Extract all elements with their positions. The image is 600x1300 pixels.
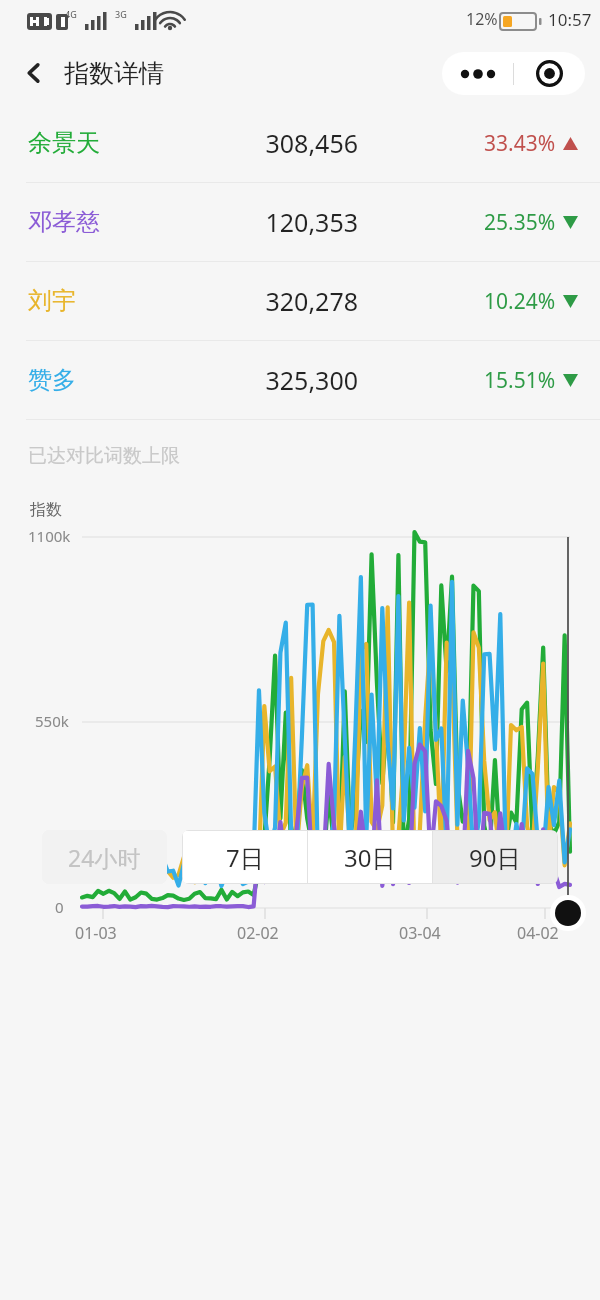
button[interactable]: 24小时 bbox=[42, 830, 167, 884]
staticText: 指数详情 bbox=[64, 58, 164, 89]
staticText: 邓孝慈 bbox=[28, 207, 208, 237]
staticText: 03-04 bbox=[399, 922, 441, 944]
staticText: 308,456 bbox=[208, 126, 358, 160]
button[interactable]: 30日 bbox=[308, 831, 432, 883]
staticText: 90日 bbox=[469, 841, 521, 874]
staticText: 10:57 bbox=[548, 8, 592, 31]
staticText: 30日 bbox=[344, 841, 396, 874]
staticText: 赞多 bbox=[28, 365, 208, 395]
staticText: 04-02 bbox=[517, 922, 559, 944]
button[interactable]: 7日 bbox=[183, 831, 307, 883]
button[interactable]: 邓孝慈 bbox=[0, 183, 600, 261]
staticText: 已达对比词数上限 bbox=[28, 444, 180, 468]
button[interactable]: 赞多 bbox=[0, 341, 600, 419]
staticText: 10.24% bbox=[484, 287, 556, 316]
staticText: 120,353 bbox=[208, 205, 358, 239]
button[interactable]: 90日 bbox=[433, 831, 557, 883]
staticText: 12% bbox=[466, 8, 498, 30]
staticText: 320,278 bbox=[208, 284, 358, 318]
staticText: 4G bbox=[65, 8, 77, 20]
staticText: 7日 bbox=[226, 841, 264, 874]
staticText: 01-03 bbox=[75, 922, 117, 944]
staticText: 02-02 bbox=[237, 922, 279, 944]
staticText: 325,300 bbox=[208, 363, 358, 397]
staticText: 指数 bbox=[30, 500, 62, 520]
button[interactable]: Target bbox=[514, 52, 585, 95]
staticText: 余景天 bbox=[28, 128, 208, 158]
staticText: 15.51% bbox=[484, 366, 556, 395]
staticText: 1100k bbox=[28, 526, 71, 546]
staticText: 0 bbox=[55, 897, 64, 917]
staticText: 33.43% bbox=[484, 129, 556, 158]
button[interactable]: Back bbox=[12, 51, 56, 95]
staticText: 25.35% bbox=[484, 208, 556, 237]
staticText: 3G bbox=[115, 8, 127, 20]
button[interactable]: More bbox=[442, 52, 513, 95]
staticText: 刘宇 bbox=[28, 286, 208, 316]
button[interactable]: 刘宇 bbox=[0, 262, 600, 340]
staticText: 24小时 bbox=[68, 842, 141, 873]
staticText: 550k bbox=[35, 711, 69, 731]
button[interactable]: 余景天 bbox=[0, 104, 600, 182]
